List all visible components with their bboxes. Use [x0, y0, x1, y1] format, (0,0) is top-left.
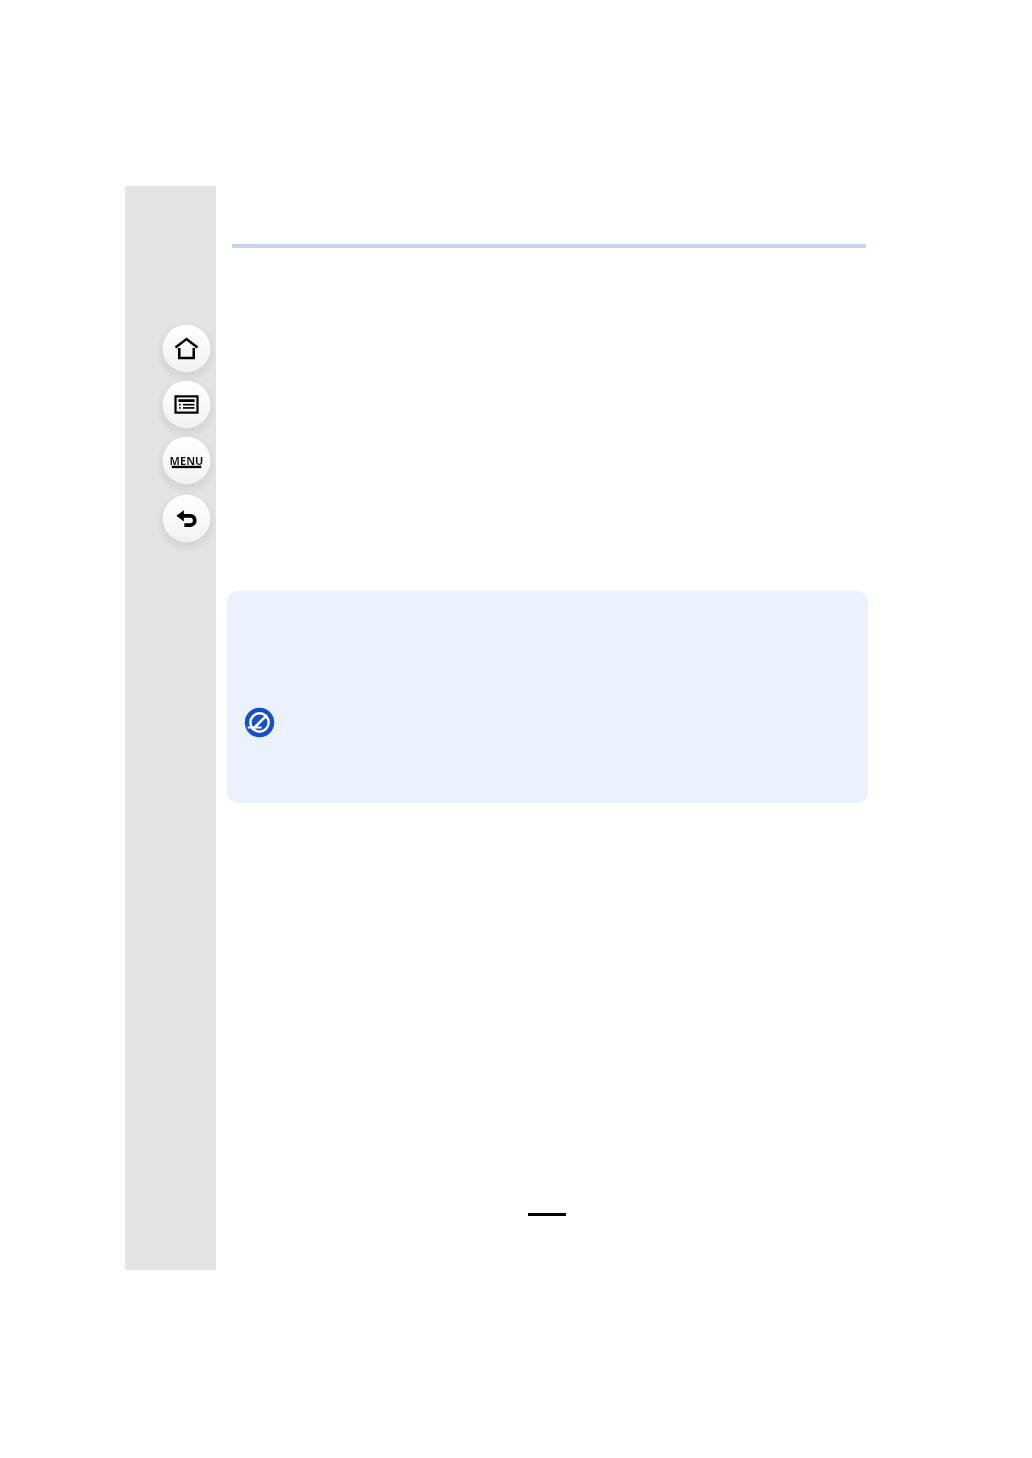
button[interactable]: Back: [155, 487, 218, 550]
button[interactable]: MENU: [155, 429, 218, 492]
staticText: MENU: [155, 453, 218, 467]
button[interactable]: Home: [155, 317, 218, 380]
button[interactable]: Playback: [155, 373, 218, 436]
